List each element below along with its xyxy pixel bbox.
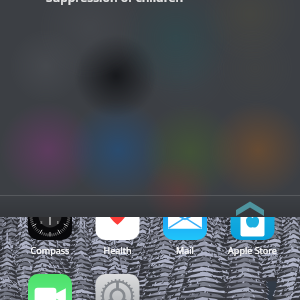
- button[interactable]: Home screen: [0, 0, 300, 300]
